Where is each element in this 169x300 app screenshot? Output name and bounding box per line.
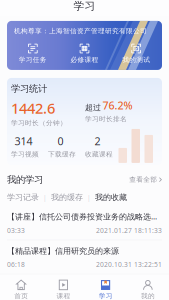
staticText: 2 bbox=[94, 134, 100, 148]
staticText: 2021.01.27 18:11:33 bbox=[96, 226, 162, 235]
staticText: | bbox=[87, 193, 91, 202]
staticText: 学习统计 bbox=[11, 83, 47, 94]
staticText: 课程 bbox=[56, 292, 70, 300]
staticText: 收藏课程 bbox=[85, 150, 113, 158]
staticText: 学习时长（分钟） bbox=[11, 119, 67, 127]
staticText: 学习 bbox=[99, 292, 113, 300]
staticText: 0 bbox=[57, 134, 63, 148]
button[interactable]: 课程 bbox=[42, 274, 84, 300]
button[interactable]: 查看全部 bbox=[129, 175, 162, 184]
button[interactable]: 我的测试 bbox=[110, 43, 162, 64]
button[interactable]: 【讲座】信托公司债券投资业务的战略选择与... bbox=[0, 205, 169, 240]
button[interactable]: 【精品课程】信用研究员的来源 bbox=[0, 240, 169, 274]
staticText: 我的学习 bbox=[7, 174, 43, 185]
staticText: 查看全部 bbox=[129, 175, 157, 184]
staticText: 我的测试 bbox=[122, 56, 150, 64]
staticText: 学习任务 bbox=[19, 56, 47, 64]
staticText: 1442.6 bbox=[11, 98, 55, 118]
staticText: 我的收藏 bbox=[95, 192, 127, 202]
button[interactable]: 首页 bbox=[0, 274, 42, 300]
button[interactable]: 必修课程 bbox=[59, 43, 110, 64]
staticText: 【讲座】信托公司债券投资业务的战略选择与... bbox=[7, 211, 162, 222]
staticText: 76.2% bbox=[102, 98, 132, 113]
staticText: 我的 bbox=[141, 292, 155, 300]
staticText: 首页 bbox=[14, 292, 28, 300]
staticText: 机构尊享：上海智信资产管理研究有限公司 bbox=[14, 27, 147, 35]
staticText: 必修课程 bbox=[70, 56, 98, 64]
staticText: 学习视频 bbox=[11, 150, 39, 158]
staticText: | bbox=[43, 193, 47, 202]
button[interactable]: 我的收藏 bbox=[95, 192, 127, 202]
button[interactable]: 学习记录 bbox=[7, 192, 39, 202]
staticText: 314 bbox=[14, 134, 32, 148]
staticText: 学习时长排名 bbox=[85, 115, 127, 123]
staticText: 下载缓存 bbox=[48, 150, 76, 158]
button[interactable]: 学习任务 bbox=[7, 43, 59, 64]
button[interactable]: 学习 bbox=[84, 274, 127, 300]
staticText: 【精品课程】信用研究员的来源 bbox=[7, 246, 119, 256]
staticText: 我的缓存 bbox=[51, 192, 83, 202]
button[interactable]: 我的缓存 bbox=[51, 192, 83, 202]
staticText: 2020.10.31 13:22:51 bbox=[96, 260, 162, 269]
staticText: 03:33 bbox=[7, 226, 25, 235]
staticText: 学习 bbox=[73, 0, 95, 12]
button[interactable]: 我的 bbox=[127, 274, 169, 300]
staticText: 06:18 bbox=[7, 260, 25, 269]
staticText: 学习记录 bbox=[7, 192, 39, 202]
staticText: 超过 bbox=[85, 103, 101, 112]
